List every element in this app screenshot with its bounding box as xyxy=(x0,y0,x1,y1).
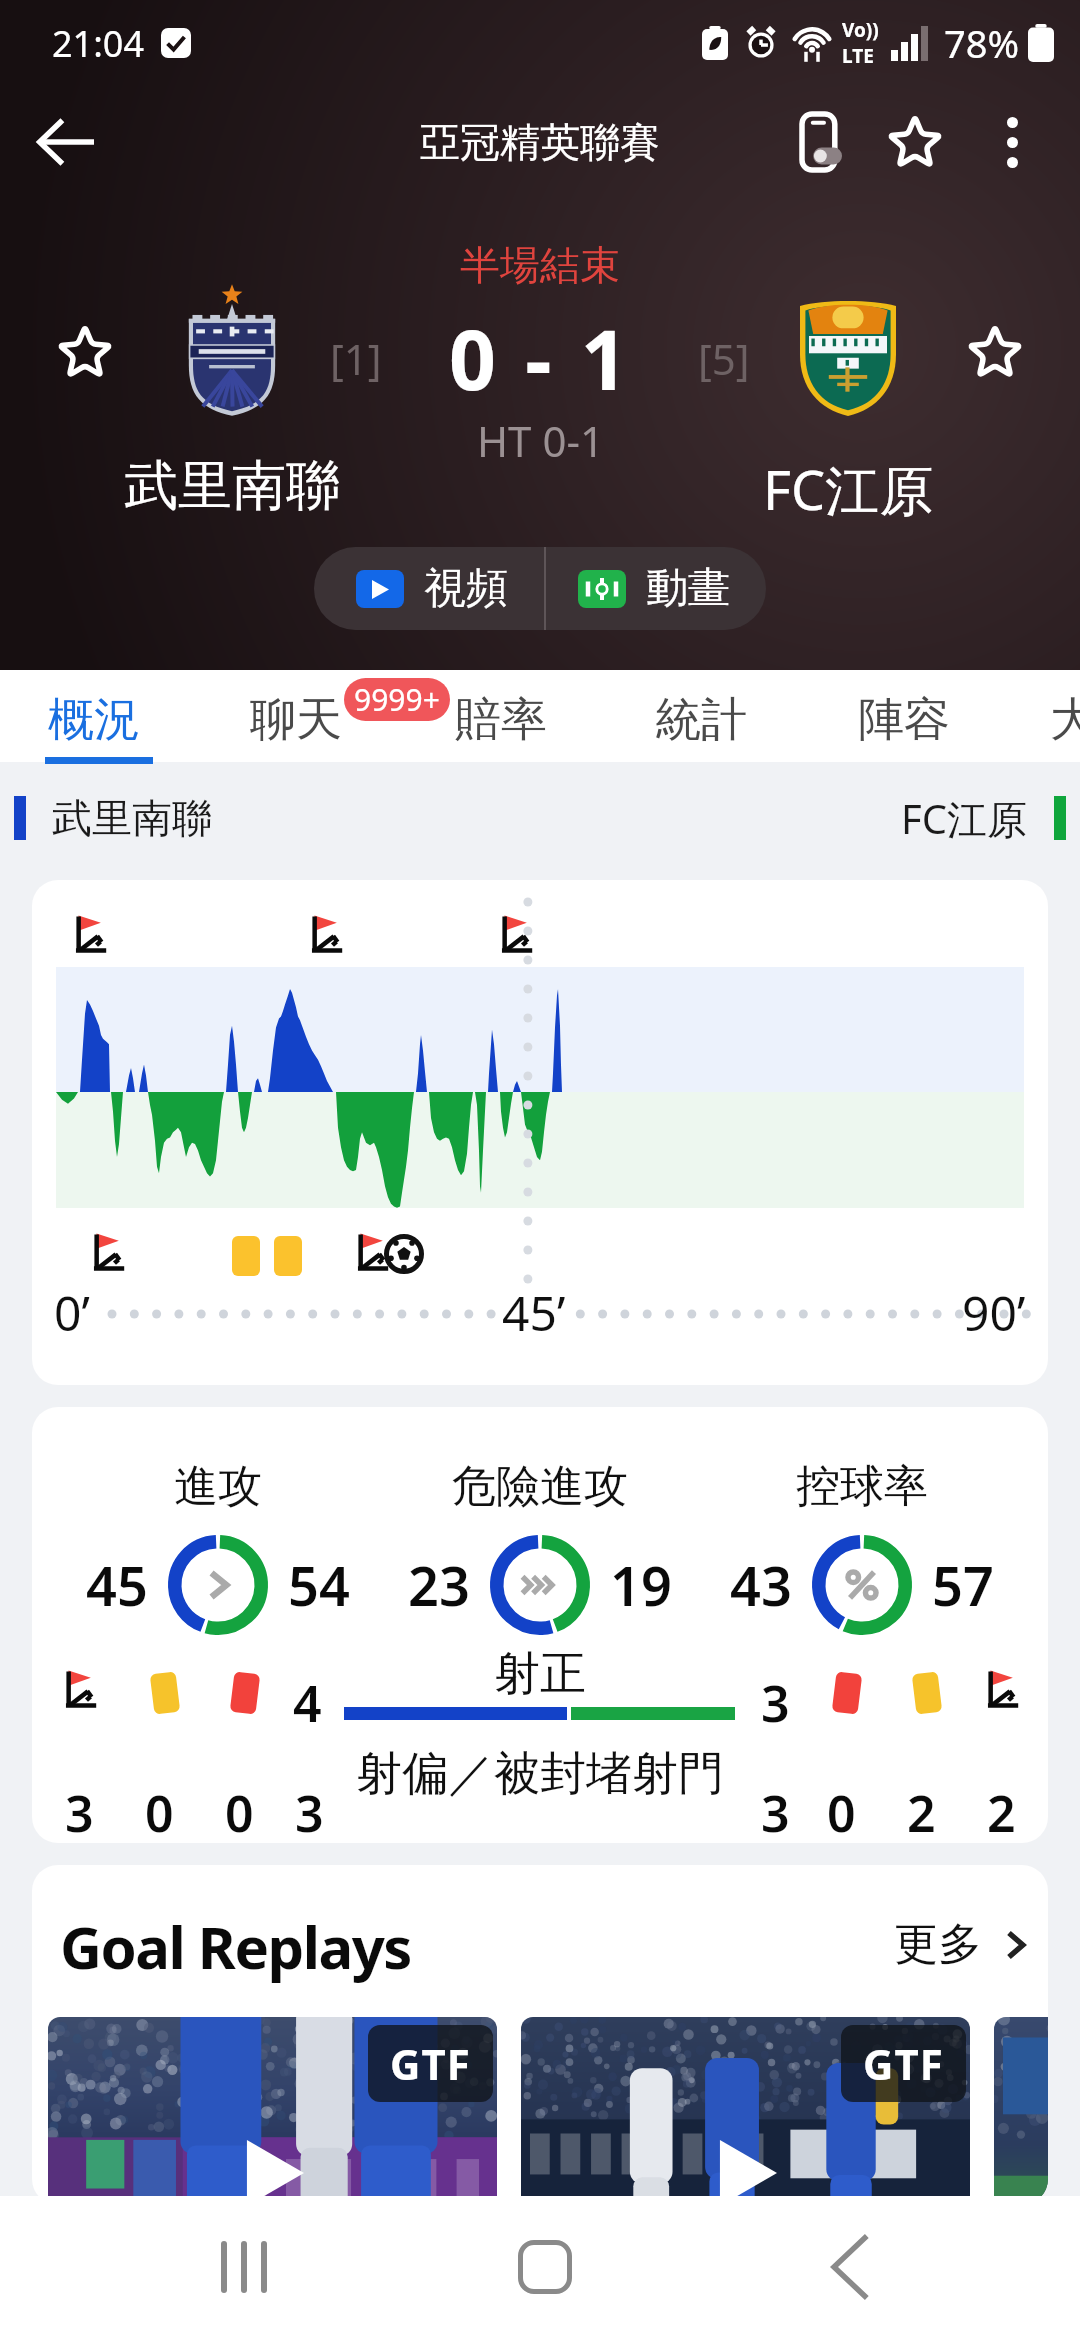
staticText: 54 xyxy=(288,1548,350,1622)
staticText: [5] xyxy=(698,330,750,387)
staticText: 3 xyxy=(761,1669,790,1737)
staticText: 武里南聯 xyxy=(52,793,212,843)
button[interactable]: 賠率 xyxy=(455,670,547,762)
button[interactable]: 聊天 xyxy=(250,670,342,762)
button[interactable]: Cast to device xyxy=(778,98,866,186)
staticText: GTF xyxy=(863,2035,944,2092)
staticText: 聊天 xyxy=(250,691,342,749)
staticText: GTF xyxy=(390,2035,471,2092)
button[interactable]: More options xyxy=(968,98,1056,186)
button[interactable]: Back xyxy=(22,98,110,186)
staticText: 45’ xyxy=(502,1280,566,1345)
staticText: [1] xyxy=(330,330,382,387)
staticText: 賠率 xyxy=(455,691,547,749)
button[interactable]: Favorite home team xyxy=(45,312,125,392)
staticText: 3 xyxy=(65,1779,94,1843)
button[interactable]: 概況 xyxy=(48,670,140,762)
staticText: 90’ xyxy=(962,1280,1026,1345)
button[interactable]: Home xyxy=(485,2207,605,2327)
staticText: 進攻 xyxy=(174,1459,262,1514)
button[interactable]: Back xyxy=(790,2207,910,2327)
staticText: 57 xyxy=(932,1548,994,1622)
staticText: 23 xyxy=(408,1548,470,1622)
staticText: 更多 xyxy=(894,1917,982,1972)
staticText: 動畫 xyxy=(646,562,730,615)
staticText: 0 - 1 xyxy=(449,302,632,414)
button[interactable]: 大 xyxy=(1050,670,1080,762)
staticText: 3 xyxy=(761,1779,790,1843)
staticText: 45 xyxy=(86,1548,148,1622)
staticText: 2 xyxy=(907,1779,936,1843)
staticText: HT 0-1 xyxy=(477,412,604,469)
staticText: 統計 xyxy=(655,691,747,749)
button[interactable]: Favorite xyxy=(871,98,959,186)
staticText: 0’ xyxy=(54,1280,90,1345)
button[interactable]: Favorite away team xyxy=(955,312,1035,392)
staticText: 3 xyxy=(295,1779,324,1843)
button[interactable]: Play goal replay xyxy=(994,2017,1048,2205)
staticText: FC江原 xyxy=(901,791,1028,846)
button[interactable]: 進攻 xyxy=(57,1459,379,1649)
staticText: 大 xyxy=(1050,691,1080,749)
staticText: 危險進攻 xyxy=(452,1459,628,1514)
staticText: 0 xyxy=(225,1779,254,1843)
staticText: 半場結束 xyxy=(0,240,1080,290)
button[interactable]: Recent apps xyxy=(184,2207,304,2327)
button[interactable]: 控球率 xyxy=(701,1459,1023,1649)
staticText: 0 xyxy=(827,1779,856,1843)
staticText: Vo)) xyxy=(842,17,879,43)
button[interactable]: Play goal replay xyxy=(48,2017,497,2205)
staticText: 9999+ xyxy=(354,679,440,720)
button[interactable]: 統計 xyxy=(655,670,747,762)
staticText: 射正 xyxy=(494,1645,586,1703)
staticText: 19 xyxy=(610,1548,672,1622)
staticText: 4 xyxy=(293,1669,322,1737)
staticText: 21:04 xyxy=(52,19,145,68)
staticText: 概況 xyxy=(48,691,140,749)
button[interactable]: 動畫 xyxy=(546,547,766,630)
staticText: LTE xyxy=(842,43,874,69)
staticText: 43 xyxy=(730,1548,792,1622)
staticText: 2 xyxy=(987,1779,1016,1843)
staticText: FC江原 xyxy=(763,452,934,526)
staticText: 武里南聯 xyxy=(124,452,340,520)
button[interactable]: 視頻 xyxy=(314,547,544,630)
button[interactable]: 更多 xyxy=(894,1917,1030,1972)
button[interactable]: 陣容 xyxy=(858,670,950,762)
staticText: 射偏／被封堵射門 xyxy=(356,1745,724,1803)
button[interactable]: Play goal replay xyxy=(521,2017,970,2205)
staticText: 視頻 xyxy=(424,562,508,615)
staticText: 亞冠精英聯賽 xyxy=(420,117,660,167)
staticText: 78% xyxy=(944,17,1020,69)
staticText: 陣容 xyxy=(858,691,950,749)
button[interactable]: 危險進攻 xyxy=(379,1459,701,1649)
staticText: 控球率 xyxy=(796,1459,928,1514)
staticText: 0 xyxy=(145,1779,174,1843)
staticText: Goal Replays xyxy=(60,1907,411,1986)
